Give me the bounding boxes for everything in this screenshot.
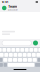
staticText: Team xyxy=(8,4,17,8)
staticText: 9:41 xyxy=(2,0,8,4)
staticText: online xyxy=(8,8,18,12)
